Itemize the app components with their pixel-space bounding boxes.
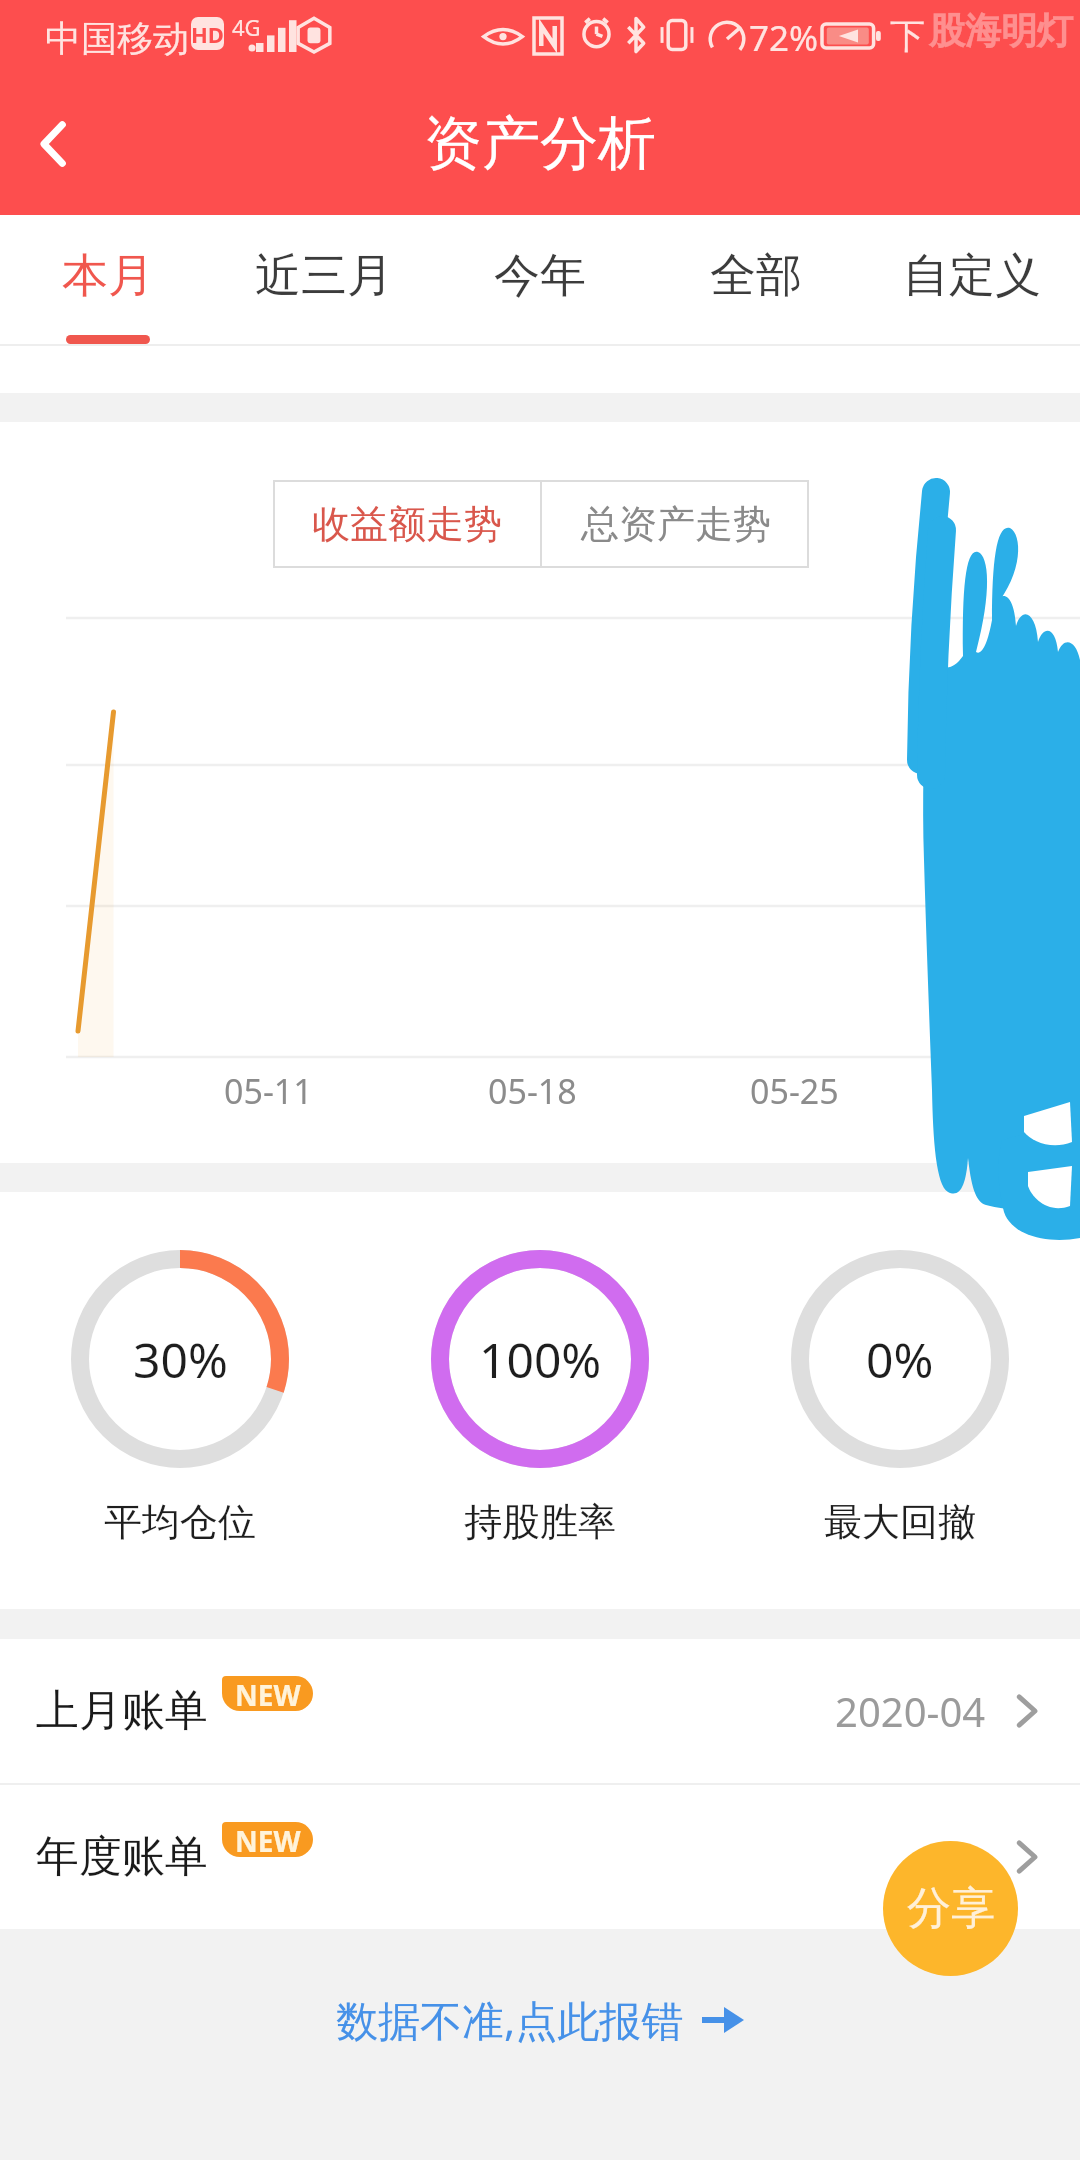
button[interactable]: 总资产走势 <box>542 480 809 568</box>
staticText: HD <box>191 19 224 49</box>
staticText: 近三月 <box>255 247 393 305</box>
staticText: 2020-04 <box>835 1684 986 1738</box>
staticText: 05-18 <box>488 1068 577 1114</box>
staticText: 平均仓位 <box>104 1498 256 1546</box>
button[interactable]: Back <box>0 89 110 199</box>
staticText: 72% <box>749 14 819 62</box>
staticText: 05-25 <box>750 1068 839 1114</box>
button[interactable]: 上月账单 <box>0 1639 1080 1783</box>
staticText: 总资产走势 <box>581 500 771 548</box>
staticText: 05-11 <box>224 1068 313 1114</box>
button[interactable]: 本月 <box>0 215 216 346</box>
staticText: 年度账单 <box>36 1830 208 1884</box>
button[interactable]: 年度账单 <box>0 1785 1080 1929</box>
button[interactable]: 自定义 <box>864 215 1080 346</box>
staticText: 中国移动 <box>45 16 189 61</box>
button[interactable]: 全部 <box>648 215 864 346</box>
button[interactable]: 数据不准,点此报错 <box>316 1983 764 2056</box>
staticText: 今年 <box>494 247 586 305</box>
staticText: 最大回撤 <box>824 1498 976 1546</box>
staticText: NEW <box>235 1676 301 1711</box>
button[interactable]: 近三月 <box>216 215 432 346</box>
staticText: 股海明灯 <box>929 8 1073 53</box>
staticText: 上月账单 <box>36 1684 208 1738</box>
staticText: 本月 <box>62 247 154 305</box>
staticText: 资产分析 <box>424 107 656 180</box>
staticText: 4G <box>232 12 261 42</box>
staticText: 分享 <box>907 1881 995 1936</box>
staticText: 自定义 <box>903 247 1041 305</box>
button[interactable]: 分享 <box>883 1841 1018 1976</box>
staticText: 100% <box>479 1327 602 1392</box>
staticText: 收益额走势 <box>312 500 502 548</box>
staticText: NEW <box>235 1822 301 1857</box>
staticText: 持股胜率 <box>464 1498 616 1546</box>
button[interactable]: 收益额走势 <box>273 480 540 568</box>
button[interactable]: 今年 <box>432 215 648 346</box>
staticText: 下 <box>890 14 925 58</box>
staticText: 全部 <box>710 247 802 305</box>
staticText: 数据不准,点此报错 <box>336 1991 684 2048</box>
staticText: 30% <box>133 1327 228 1392</box>
staticText: 0% <box>866 1327 934 1392</box>
